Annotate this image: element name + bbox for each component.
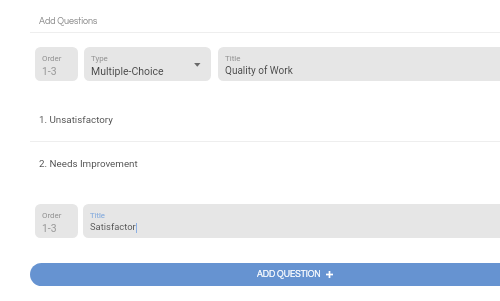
- staticText: Multiple-Choice: [91, 65, 164, 77]
- staticText: Satisfactor: [90, 221, 136, 232]
- button[interactable]: ADD QUESTION: [30, 263, 500, 286]
- staticText: Add Questions: [39, 17, 98, 26]
- staticText: 1-3: [42, 65, 57, 77]
- button[interactable]: Title: [83, 204, 500, 238]
- button[interactable]: 1. Unsatisfactory: [0, 103, 500, 132]
- other: Expand question type dropdown: [84, 47, 211, 81]
- button[interactable]: Type: [84, 47, 211, 81]
- staticText: 1-3: [42, 222, 57, 234]
- staticText: Order: [42, 54, 62, 63]
- staticText: 2. Needs Improvement: [39, 158, 138, 169]
- button[interactable]: Title: [218, 47, 500, 81]
- staticText: Title: [225, 54, 241, 63]
- staticText: Quality of Work: [225, 65, 293, 77]
- staticText: Type: [91, 54, 108, 63]
- staticText: ADD QUESTION: [257, 270, 321, 279]
- button[interactable]: 2. Needs Improvement: [0, 147, 500, 176]
- button[interactable]: Order: [35, 204, 78, 238]
- staticText: Order: [42, 211, 62, 220]
- button[interactable]: Order: [35, 47, 78, 81]
- staticText: 1. Unsatisfactory: [39, 114, 113, 125]
- staticText: Title: [90, 211, 105, 220]
